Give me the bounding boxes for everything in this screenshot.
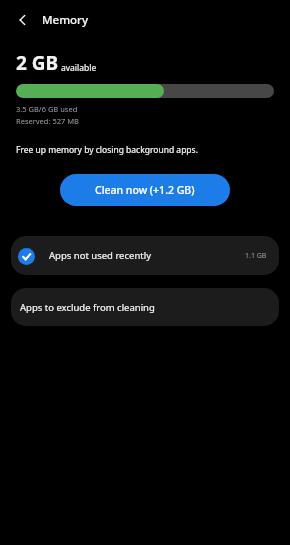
staticText: Reserved: 527 MB <box>16 116 79 126</box>
button[interactable]: Apps not used recently <box>11 236 279 275</box>
staticText: available <box>61 62 97 74</box>
staticText: Apps not used recently <box>49 249 245 262</box>
staticText: 3.5 GB/6 GB used <box>16 104 78 114</box>
staticText: 2 GB <box>16 50 59 76</box>
staticText: Clean now (+1.2 GB) <box>95 183 195 197</box>
staticText: Free up memory by closing background app… <box>16 144 198 156</box>
staticText: Memory <box>42 12 89 28</box>
button[interactable]: Clean now (+1.2 GB) <box>60 174 230 206</box>
button[interactable]: Back <box>10 7 36 33</box>
staticText: Apps to exclude from cleaning <box>20 301 155 314</box>
button[interactable]: Apps to exclude from cleaning <box>11 288 279 326</box>
staticText: 1.1 GB <box>245 251 267 261</box>
